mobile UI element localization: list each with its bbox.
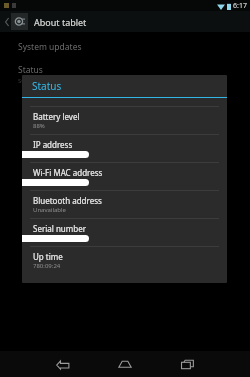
button[interactable] xyxy=(0,88,250,110)
staticText: 780:09:24 xyxy=(33,262,61,270)
staticText: 6:17 xyxy=(233,1,247,11)
button[interactable]: Serial number xyxy=(22,219,227,247)
button[interactable]: Wi-Fi MAC address xyxy=(22,163,227,191)
button[interactable]: IP address xyxy=(22,135,227,163)
staticText: System updates xyxy=(18,41,82,53)
staticText: 88% xyxy=(33,122,45,130)
button[interactable]: Status xyxy=(0,64,250,85)
button[interactable] xyxy=(0,110,250,132)
button[interactable] xyxy=(0,132,250,154)
button[interactable]: Navigate up xyxy=(3,15,11,29)
button[interactable]: Bluetooth address xyxy=(22,191,227,219)
staticText: Up time xyxy=(33,251,63,262)
button[interactable]: Recent apps xyxy=(156,351,218,377)
button[interactable] xyxy=(0,154,250,176)
staticText: Status of the battery, network, and othe… xyxy=(18,77,168,85)
button[interactable]: System updates xyxy=(0,36,250,58)
button[interactable]: Settings xyxy=(11,13,28,30)
button[interactable]: Battery level xyxy=(22,107,227,135)
button[interactable]: Up time xyxy=(22,247,227,274)
staticText: About tablet xyxy=(34,16,87,28)
staticText: Status xyxy=(18,64,43,76)
button[interactable]: Navigate up xyxy=(0,11,250,32)
staticText: Status xyxy=(32,79,62,93)
button[interactable]: Back xyxy=(32,351,94,377)
button[interactable] xyxy=(0,198,250,220)
staticText: Bluetooth address xyxy=(33,195,102,206)
staticText: Battery level xyxy=(33,111,80,122)
staticText: IP address xyxy=(33,139,73,150)
staticText: Wi-Fi MAC address xyxy=(33,167,103,178)
button[interactable] xyxy=(0,176,250,198)
button[interactable]: Home xyxy=(94,351,156,377)
staticText: Serial number xyxy=(33,223,87,234)
staticText: Unavailable xyxy=(33,206,66,214)
